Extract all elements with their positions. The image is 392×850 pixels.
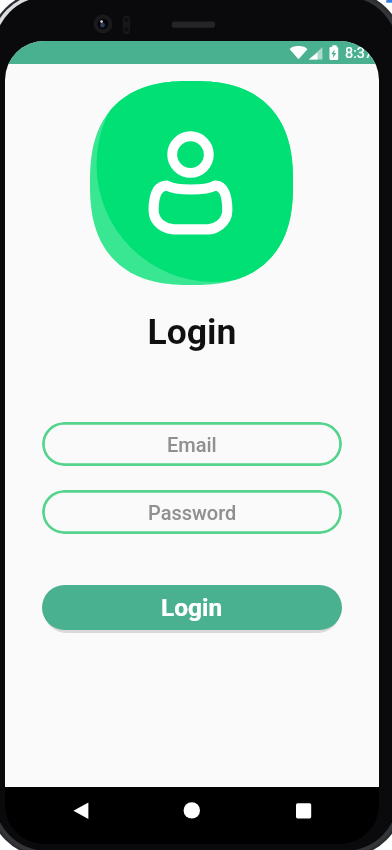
staticText: Email [167,433,217,456]
button[interactable]: Login [42,585,342,630]
button[interactable]: Password [42,490,342,534]
staticText: Login [5,311,379,353]
button[interactable]: Recent apps [283,795,325,827]
button[interactable]: Email [42,422,342,466]
staticText: Password [148,501,237,524]
staticText: 8:37 [345,45,373,62]
button[interactable]: Home [171,795,213,827]
staticText: Login [161,593,223,622]
button[interactable]: Back [60,795,102,827]
